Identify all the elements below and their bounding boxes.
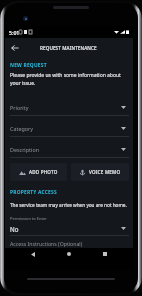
staticText: The service team may arrive when you are… [10,202,129,208]
button[interactable]: Category [10,123,129,137]
staticText: VOICE MEMO [89,169,121,175]
button[interactable]: Back [27,248,39,260]
staticText: Category [10,125,118,132]
staticText: No [10,225,118,233]
button[interactable]: Permission to Enter [10,216,129,236]
staticText: 5:01 [9,29,20,36]
staticText: Description [10,146,118,153]
other: Open selector [118,223,129,234]
staticText: REQUEST MAINTENANCE [40,45,97,51]
staticText: PROPERTY ACCESS [10,189,57,196]
other: Open selector [118,123,129,134]
staticText: Permission to Enter [10,216,47,221]
other: Open selector [118,102,129,113]
button[interactable]: ADD PHOTO [10,163,67,181]
button[interactable]: Back [5,38,25,58]
button[interactable]: VOICE MEMO [71,163,129,181]
button[interactable]: Recent apps [99,248,111,260]
staticText: NEW REQUEST [10,62,47,69]
button[interactable]: Priority [10,102,129,116]
staticText: ADD PHOTO [29,169,58,175]
staticText: Access Instructions (Optional) [10,240,83,247]
button[interactable]: Description [10,144,129,158]
staticText: Priority [10,104,118,111]
staticText: Please provide us with some information … [10,72,129,87]
other: Open selector [118,144,129,155]
button[interactable]: Home [63,248,75,260]
